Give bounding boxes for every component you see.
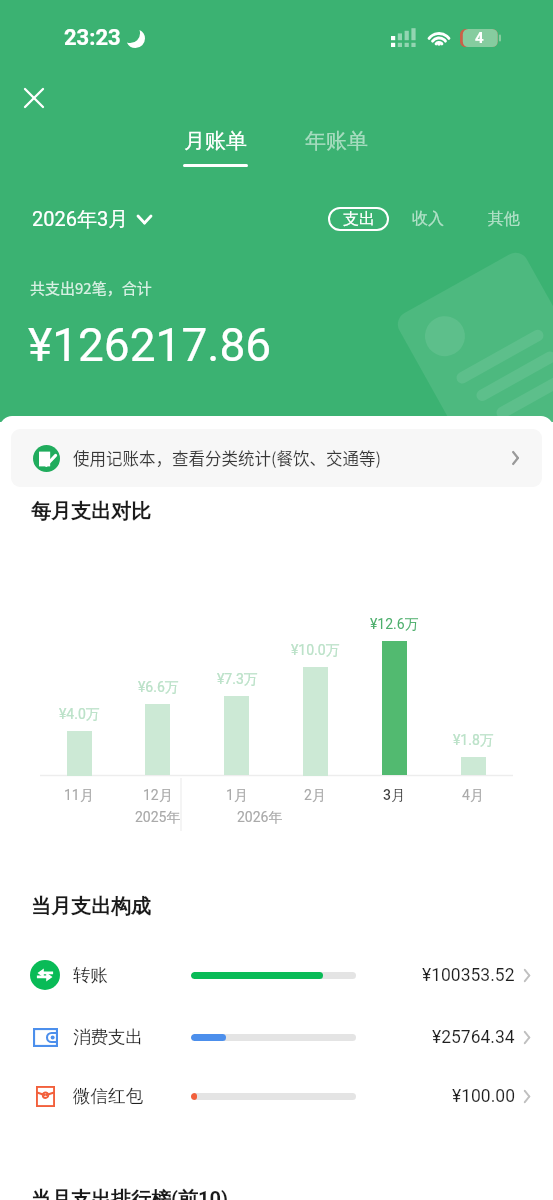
button[interactable]: 2026年3月 [26,203,158,236]
staticText: 12月 [143,787,173,805]
staticText: ¥1.8万 [453,732,494,750]
button[interactable]: 转账 [0,949,553,1001]
staticText: 月账单 [184,128,247,154]
staticText: 2026年 [237,809,283,827]
staticText: 支出 [343,209,375,229]
staticText: 年账单 [305,128,368,154]
button[interactable]: 支出 [328,207,389,231]
button[interactable]: 月账单 [177,124,254,171]
staticText: ¥126217.86 [28,318,272,372]
staticText: 1月 [226,787,248,805]
staticText: 2月 [304,787,326,805]
staticText: 当月支出排行榜(前10) [31,1187,228,1200]
staticText: 4 [475,29,484,47]
staticText: ¥25764.34 [432,1027,515,1048]
button[interactable]: Close [12,76,56,120]
button[interactable]: 其他 [482,207,526,231]
staticText: 当月支出构成 [31,894,151,919]
staticText: 微信红包 [73,1085,143,1107]
staticText: ¥100353.52 [422,965,515,986]
staticText: 共支出92笔，合计 [30,277,152,299]
staticText: 4月 [462,787,484,805]
button[interactable]: 使用记账本，查看分类统计(餐饮、交通等) [11,429,542,487]
staticText: ¥12.6万 [370,616,419,634]
staticText: 使用记账本，查看分类统计(餐饮、交通等) [73,446,382,470]
staticText: 3月 [383,787,405,805]
staticText: 每月支出对比 [31,499,151,524]
staticText: 2026年3月 [32,207,129,232]
staticText: 收入 [412,209,444,229]
staticText: 转账 [73,964,108,986]
staticText: ¥10.0万 [291,642,340,660]
staticText: 11月 [64,787,94,805]
staticText: 其他 [488,209,520,229]
staticText: 消费支出 [73,1026,143,1048]
staticText: ¥100.00 [452,1086,515,1107]
staticText: ¥6.6万 [138,679,179,697]
button[interactable]: 微信红包 [0,1070,553,1122]
staticText: ¥4.0万 [59,706,100,724]
button[interactable]: 年账单 [299,124,374,158]
staticText: ¥7.3万 [217,671,258,689]
staticText: 23:23 [64,25,121,51]
button[interactable]: 收入 [406,207,450,231]
staticText: 2025年 [135,809,181,827]
button[interactable]: 消费支出 [0,1011,553,1063]
